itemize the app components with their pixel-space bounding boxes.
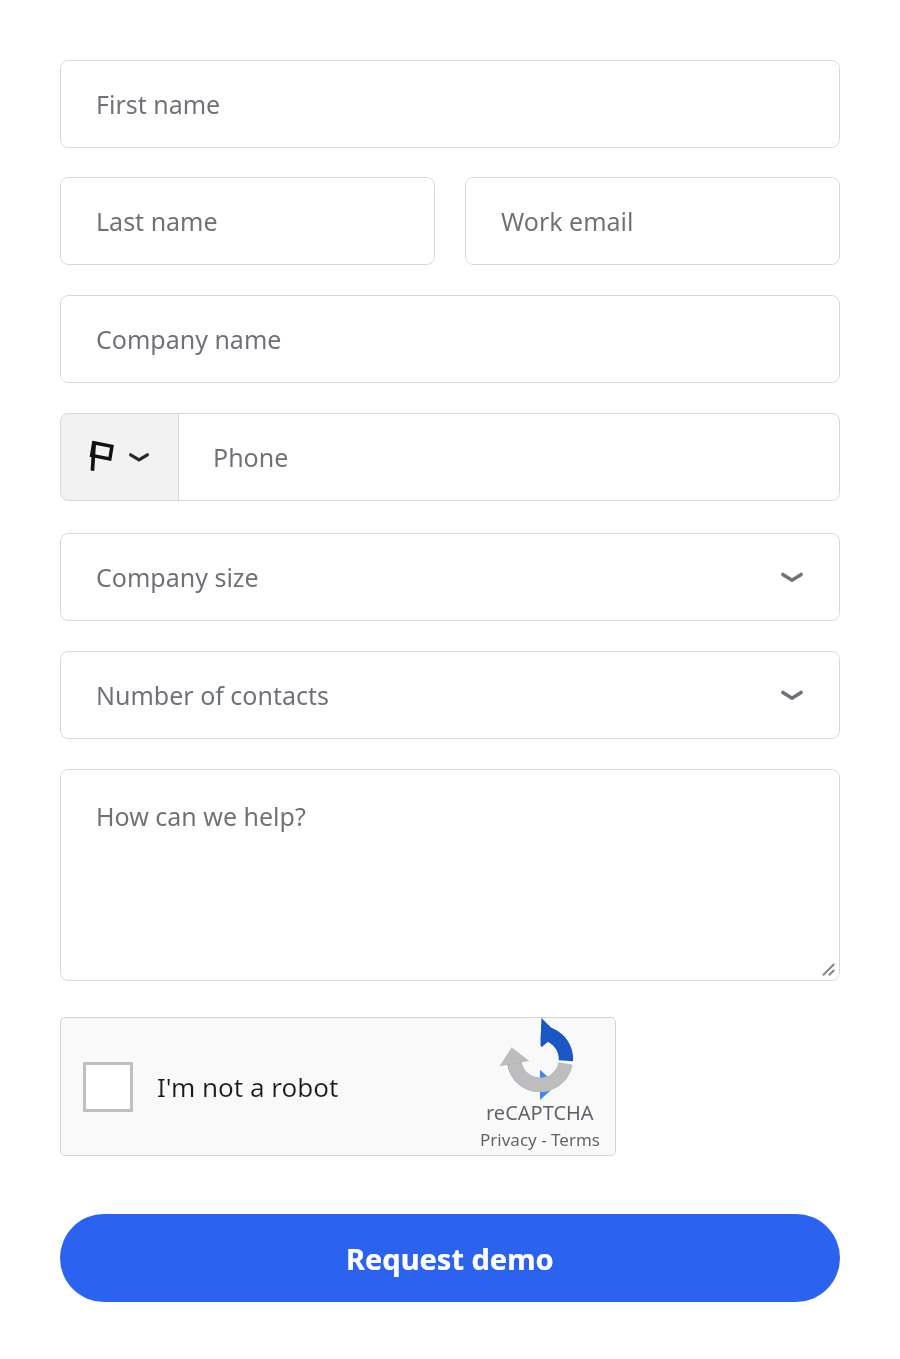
- staticText: Company size: [96, 560, 259, 594]
- staticText: Last name: [96, 204, 218, 238]
- button[interactable]: I'm not a robot: [60, 1017, 616, 1156]
- button[interactable]: First name: [60, 60, 840, 148]
- button[interactable]: How can we help?: [60, 769, 840, 981]
- staticText: Phone: [213, 440, 289, 474]
- staticText: reCAPTCHA: [486, 1099, 594, 1126]
- button[interactable]: Work email: [465, 177, 840, 265]
- staticText: First name: [96, 87, 221, 121]
- button[interactable]: Select country code: [60, 413, 178, 501]
- staticText: Number of contacts: [96, 678, 329, 712]
- staticText: How can we help?: [96, 799, 306, 833]
- staticText: I'm not a robot: [157, 1069, 339, 1104]
- button[interactable]: Company size: [60, 533, 840, 621]
- button[interactable]: Phone: [179, 413, 840, 501]
- button[interactable]: Request demo: [60, 1214, 840, 1302]
- staticText: Work email: [501, 204, 634, 238]
- button[interactable]: Company name: [60, 295, 840, 383]
- staticText: Company name: [96, 322, 282, 356]
- staticText: Privacy - Terms: [480, 1128, 600, 1151]
- button[interactable]: Number of contacts: [60, 651, 840, 739]
- staticText: Request demo: [346, 1239, 554, 1278]
- button[interactable]: Last name: [60, 177, 435, 265]
